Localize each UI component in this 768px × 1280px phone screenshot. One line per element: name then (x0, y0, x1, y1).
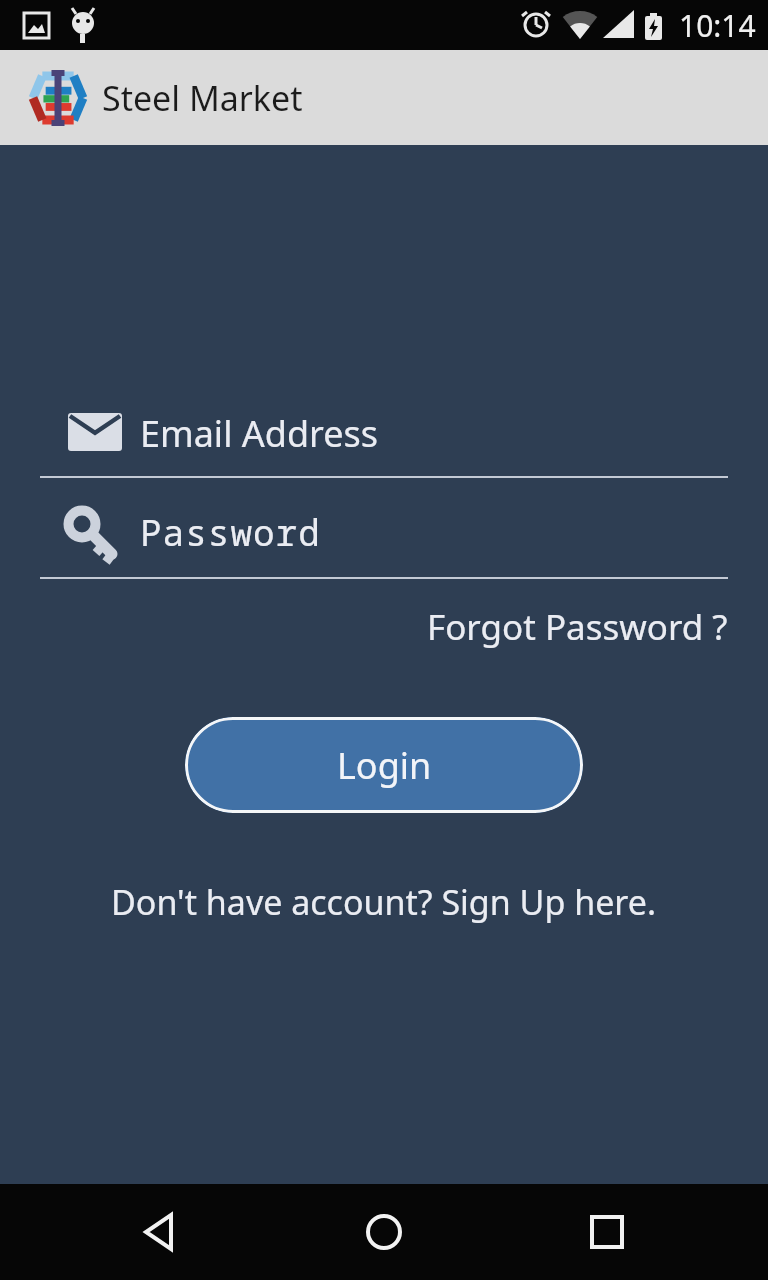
button[interactable]: Password (40, 508, 728, 556)
staticText: Steel Market (102, 75, 303, 121)
button[interactable] (336, 1184, 432, 1280)
button[interactable]: Forgot Password ? (427, 603, 728, 651)
staticText: Don't have account? Sign Up here. (111, 879, 657, 925)
staticText: Forgot Password ? (427, 603, 728, 651)
button[interactable]: Login (185, 717, 583, 813)
staticText: Email Address (140, 409, 379, 455)
staticText: Login (337, 741, 432, 790)
button[interactable]: Don't have account? Sign Up here. (111, 879, 657, 925)
button[interactable] (113, 1184, 209, 1280)
button[interactable] (559, 1184, 655, 1280)
staticText: Password (140, 508, 321, 556)
staticText: 10:14 (679, 5, 756, 46)
button[interactable]: Email Address (40, 409, 728, 455)
